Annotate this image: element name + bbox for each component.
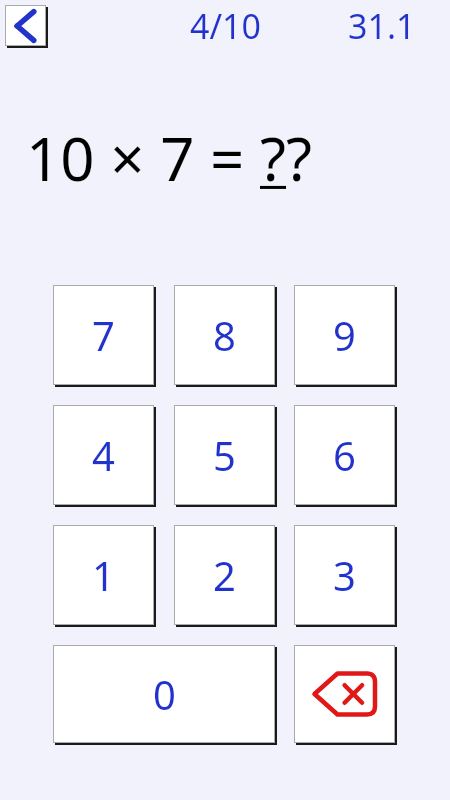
staticText: 4 [92,428,115,482]
button[interactable]: 3 [294,525,395,625]
staticText: 4/10 [190,3,261,49]
staticText: 31.1 [348,3,416,49]
staticText: 9 [333,308,356,362]
staticText: 7 [92,308,115,362]
staticText: 2 [213,548,236,602]
staticText: 10 × 7 = ?? [26,117,313,199]
staticText: 6 [333,428,356,482]
button[interactable]: 8 [174,285,275,385]
staticText: 8 [213,308,236,362]
button[interactable]: 4 [53,405,154,505]
staticText: 3 [333,548,356,602]
button[interactable]: 7 [53,285,154,385]
button[interactable]: 1 [53,525,154,625]
button[interactable]: 6 [294,405,395,505]
staticText: 1 [92,548,115,602]
button[interactable]: 2 [174,525,275,625]
button[interactable]: Backspace [294,645,395,743]
staticText: 0 [153,667,176,721]
button[interactable]: 9 [294,285,395,385]
button[interactable]: Back [5,5,46,46]
staticText: 5 [213,428,236,482]
button[interactable]: 5 [174,405,275,505]
button[interactable]: 0 [53,645,275,743]
